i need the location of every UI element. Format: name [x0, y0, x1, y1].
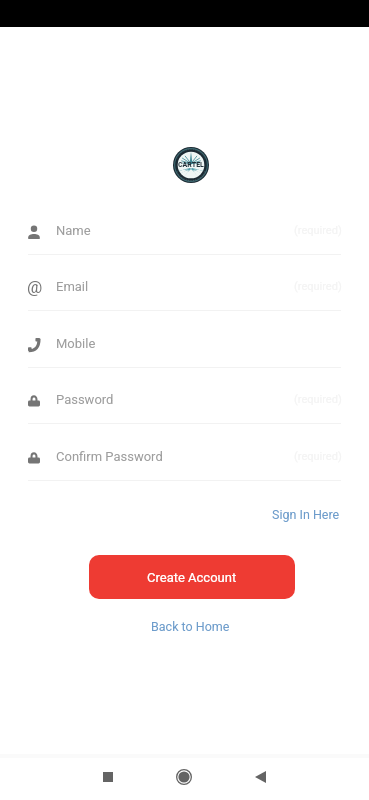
- staticText: Back to Home: [151, 619, 230, 634]
- staticText: Password: [56, 392, 114, 407]
- button[interactable]: Back: [237, 754, 283, 800]
- button[interactable]: Confirm Password: [0, 425, 369, 481]
- button[interactable]: Name: [0, 199, 369, 255]
- staticText: @: [27, 277, 43, 297]
- button[interactable]: Recent apps: [85, 754, 131, 800]
- staticText: Create Account: [147, 570, 237, 585]
- staticText: Confirm Password: [56, 449, 163, 464]
- staticText: Name: [56, 223, 91, 238]
- button[interactable]: Mobile: [0, 312, 369, 368]
- button[interactable]: Password: [0, 368, 369, 424]
- button[interactable]: Home: [161, 754, 207, 800]
- staticText: CARTEL: [178, 161, 204, 169]
- button[interactable]: Back to Home: [143, 614, 238, 639]
- staticText: Mobile: [56, 336, 96, 351]
- button[interactable]: Create Account: [89, 555, 295, 599]
- staticText: (required): [294, 280, 342, 293]
- button[interactable]: Sign In Here: [264, 502, 348, 527]
- staticText: (required): [294, 450, 342, 463]
- staticText: (required): [294, 224, 342, 237]
- staticText: Sign In Here: [272, 507, 340, 522]
- staticText: Email: [56, 279, 89, 294]
- button[interactable]: @: [0, 255, 369, 311]
- staticText: (required): [294, 393, 342, 406]
